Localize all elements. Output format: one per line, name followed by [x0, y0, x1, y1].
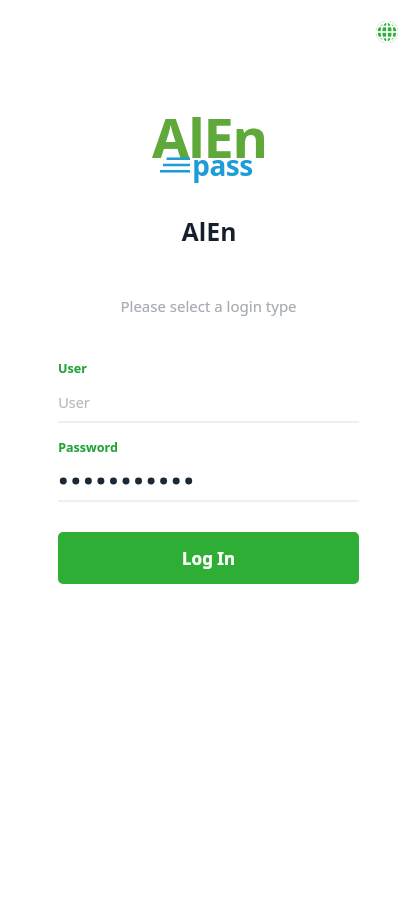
- staticText: User: [58, 360, 87, 377]
- staticText: AlEn: [152, 100, 267, 174]
- staticText: AlEn: [181, 214, 237, 248]
- button[interactable]: Log In: [58, 532, 359, 584]
- button[interactable]: Change language: [371, 16, 403, 48]
- staticText: Password: [58, 439, 118, 456]
- staticText: pass: [192, 146, 253, 184]
- staticText: Log In: [182, 547, 235, 570]
- other: AlEn pass logo: [134, 100, 284, 186]
- button[interactable]: User: [58, 391, 359, 413]
- button[interactable]: [58, 470, 359, 492]
- staticText: Please select a login type: [120, 296, 297, 316]
- staticText: User: [58, 392, 90, 412]
